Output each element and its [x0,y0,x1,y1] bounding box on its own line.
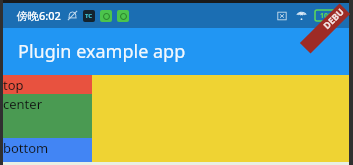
staticText: DEBUG [318,3,350,35]
staticText: 傍晚6:02 [17,8,61,23]
button[interactable]: center [3,94,92,138]
staticText: center [3,95,43,113]
button[interactable]: bottom [3,138,92,165]
button[interactable]: top [3,75,92,94]
staticText: top [3,76,24,94]
button[interactable]: Plugin example app [3,28,349,75]
staticText: Plugin example app [18,39,186,64]
other: Debug banner [297,0,353,56]
staticText: bottom [3,139,49,157]
staticText: 100 [320,11,333,21]
staticText: TC [85,12,93,20]
